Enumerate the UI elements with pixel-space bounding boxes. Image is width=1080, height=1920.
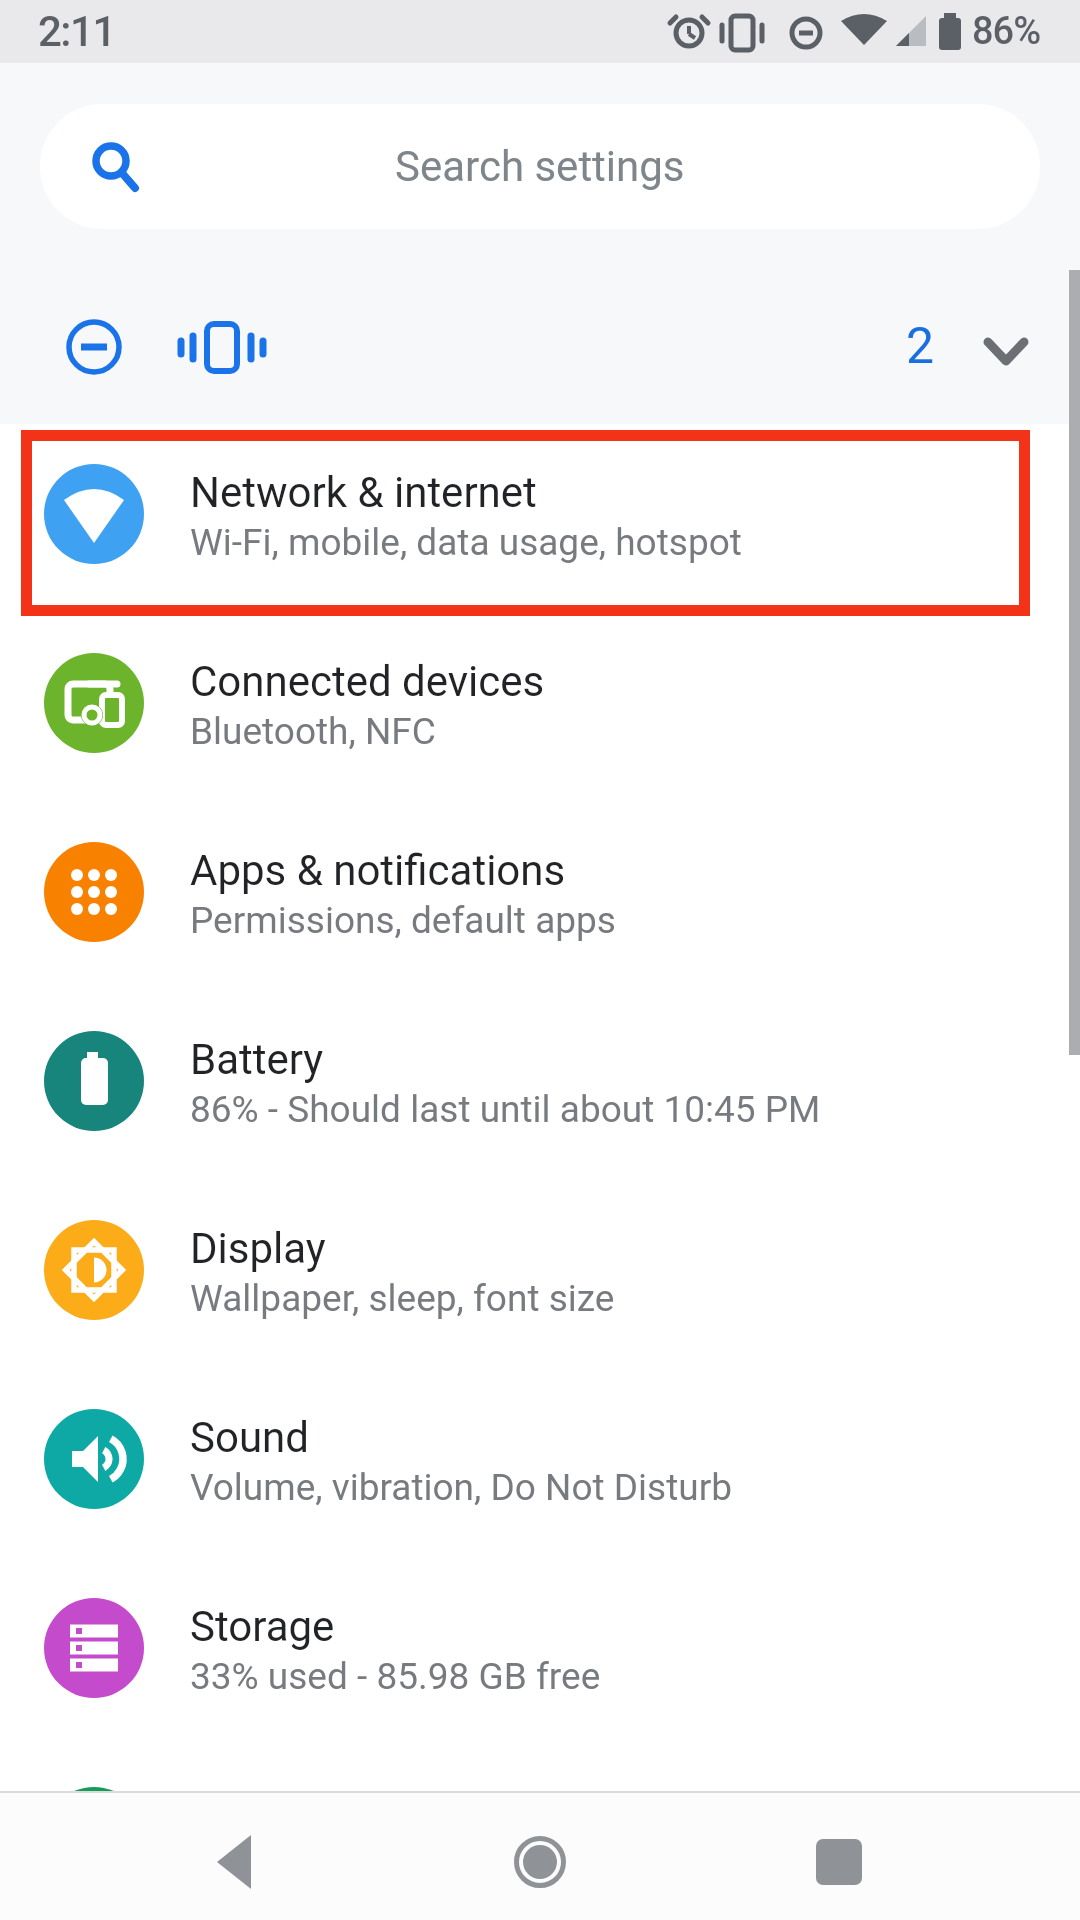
button[interactable]: Apps & notifications [0,798,1080,986]
staticText: 33% used - 85.98 GB free [190,1655,601,1698]
button[interactable]: Search settings [40,104,1040,229]
staticText: 2:11 [38,7,115,56]
staticText: Apps & notifications [190,846,566,895]
staticText: 86% [972,9,1041,54]
button[interactable]: Sound [0,1365,1080,1553]
staticText: Storage [190,1602,335,1651]
staticText: Bluetooth, NFC [190,710,436,753]
button[interactable]: Connected devices [0,609,1080,797]
staticText: 2 [906,317,935,376]
button[interactable] [460,1817,620,1907]
button[interactable]: 2 [894,310,946,382]
staticText: 86% - Should last until about 10:45 PM [190,1088,821,1131]
staticText: Sound [190,1413,309,1462]
staticText: Volume, vibration, Do Not Disturb [190,1466,733,1509]
staticText: Wi-Fi, mobile, data usage, hotspot [190,521,742,564]
button[interactable]: Battery [0,987,1080,1175]
button[interactable] [157,1817,317,1907]
staticText: Search settings [395,142,685,191]
staticText: Permissions, default apps [190,899,616,942]
button[interactable]: Network & internet [0,420,1080,608]
staticText: Network & internet [190,468,537,517]
staticText: Connected devices [190,657,545,706]
staticText: Wallpaper, sleep, font size [190,1277,615,1320]
button[interactable] [759,1817,919,1907]
button[interactable]: Storage [0,1554,1080,1742]
staticText: Battery [190,1035,324,1084]
button[interactable]: Display [0,1176,1080,1364]
staticText: Display [190,1224,326,1273]
